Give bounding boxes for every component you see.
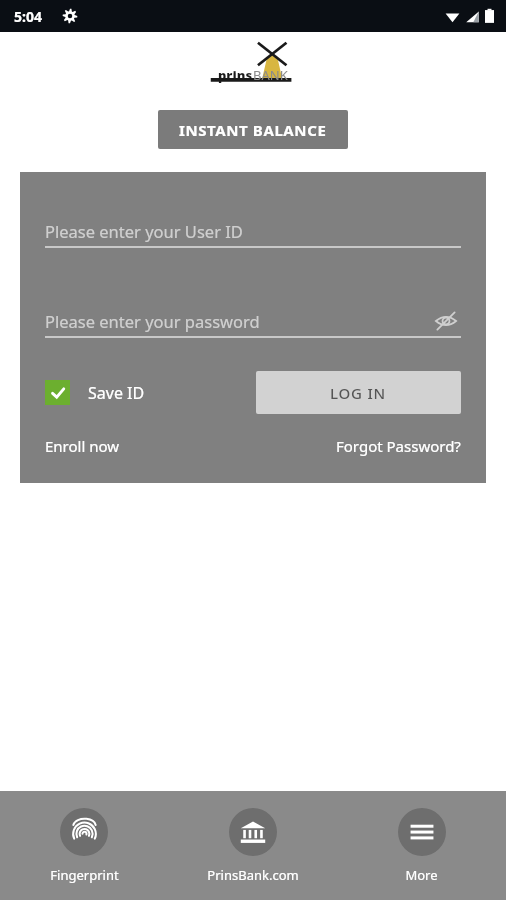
staticText: Enroll now — [45, 436, 120, 456]
staticText: Please enter your password — [45, 310, 260, 332]
staticText: LOG IN — [330, 383, 387, 403]
button[interactable]: Please enter your password — [45, 306, 461, 336]
button[interactable]: LOG IN — [256, 371, 461, 414]
staticText: prins — [218, 66, 253, 84]
staticText: Please enter your User ID — [45, 220, 243, 242]
staticText: INSTANT BALANCE — [179, 120, 327, 140]
staticText: PrinsBank.com — [207, 866, 299, 884]
button[interactable]: Please enter your User ID — [45, 216, 461, 246]
button[interactable]: Fingerprint — [0, 791, 168, 884]
button[interactable]: Save ID — [45, 380, 151, 405]
button[interactable]: PrinsBank.com — [168, 791, 337, 884]
staticText: Fingerprint — [50, 866, 119, 884]
button[interactable]: Show password — [431, 306, 461, 336]
staticText: BANK — [253, 66, 288, 84]
staticText: Forgot Password? — [336, 436, 461, 456]
button[interactable]: More — [337, 791, 506, 884]
button[interactable]: INSTANT BALANCE — [158, 110, 348, 149]
staticText: More — [405, 866, 438, 884]
staticText: Save ID — [88, 382, 145, 404]
button[interactable]: Forgot Password? — [336, 436, 461, 456]
staticText: 5:04 — [14, 7, 42, 26]
button[interactable]: Enroll now — [45, 436, 120, 456]
